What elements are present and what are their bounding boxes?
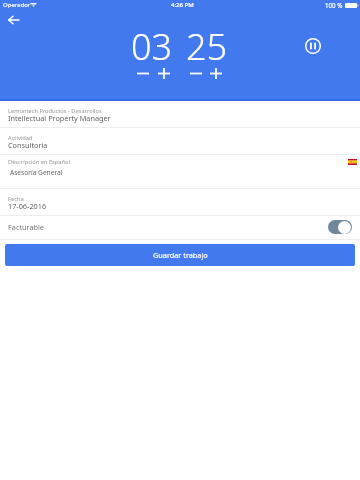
button[interactable]: Lemontech Productos - Desarrollos [0,101,360,128]
button[interactable]: Descripción en Español [0,154,360,188]
staticText: Operador [3,1,31,9]
staticText: Intellectual Property Manager [8,113,111,123]
button[interactable]: Back [2,9,24,31]
staticText: 25 [186,22,228,71]
staticText: Asesoría General [10,168,63,177]
staticText: 03 [131,22,173,71]
button[interactable]: Decrease [134,66,152,81]
staticText: Actividad [8,134,33,142]
button[interactable]: Increase [207,66,225,81]
staticText: Guardar trabajo [153,250,208,260]
staticText: 100 % [325,1,343,9]
staticText: Facturable [8,222,44,232]
staticText: 17-06-2016 [8,201,47,211]
staticText: Lemontech Productos - Desarrollos [8,107,102,115]
button[interactable]: Decrease [187,66,205,81]
staticText: Consultoria [8,140,48,150]
button[interactable]: Fecha [0,188,360,215]
staticText: Fecha [8,195,24,203]
button[interactable]: Facturable [8,215,352,240]
button[interactable]: Actividad [0,127,360,154]
staticText: 4:26 PM [171,1,194,9]
button[interactable]: Increase [155,66,173,81]
staticText: Descripción en Español [8,158,70,166]
button[interactable]: Guardar trabajo [5,244,355,266]
button[interactable]: Pause [299,32,327,60]
